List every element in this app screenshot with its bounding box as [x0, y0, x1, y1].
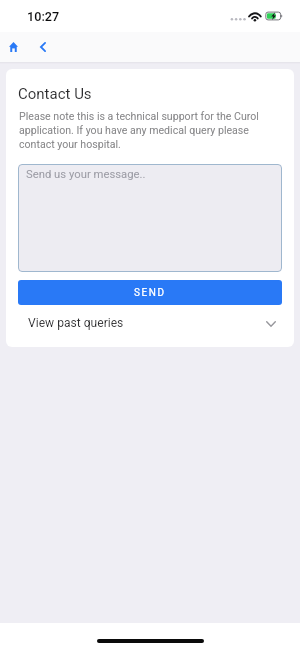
staticText: 10:27 — [27, 9, 60, 24]
button[interactable]: Home — [2, 36, 24, 58]
staticText: Send us your message.. — [26, 168, 146, 181]
button[interactable]: Back — [32, 36, 54, 58]
staticText: Contact Us — [18, 85, 92, 103]
button[interactable]: View past queries — [6, 306, 294, 340]
staticText: View past queries — [28, 316, 124, 330]
staticText: Please note this is a technical support … — [19, 110, 273, 150]
button[interactable]: Send us your message.. — [18, 164, 282, 272]
staticText: SEND — [134, 287, 166, 299]
button[interactable]: SEND — [18, 280, 282, 305]
